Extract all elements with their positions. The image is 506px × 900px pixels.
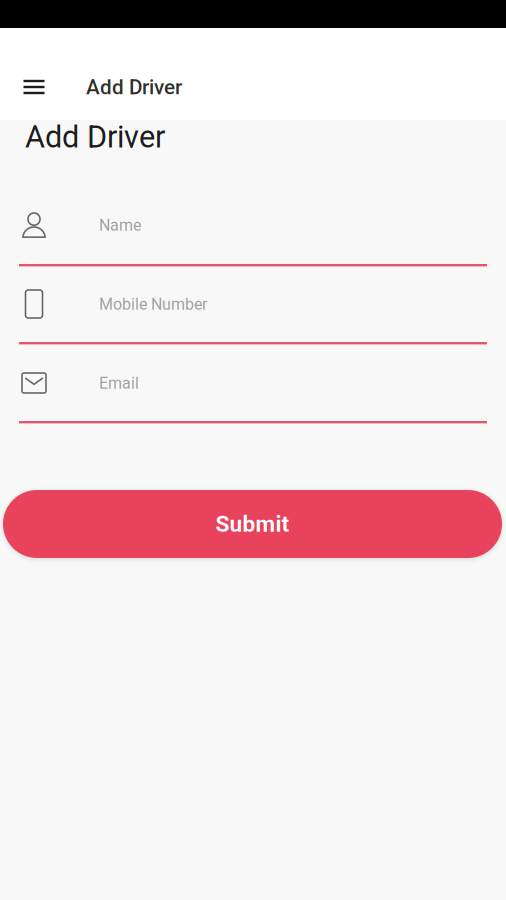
staticText: Name <box>99 216 141 235</box>
staticText: Add Driver <box>86 75 182 99</box>
staticText: Submit <box>215 511 289 537</box>
button[interactable]: Menu <box>11 65 57 109</box>
button[interactable]: Submit <box>3 490 502 558</box>
button[interactable]: Email <box>0 353 506 424</box>
button[interactable]: Name <box>0 195 506 267</box>
staticText: Add Driver <box>25 119 165 155</box>
button[interactable]: Mobile Number <box>0 274 506 345</box>
staticText: Mobile Number <box>99 295 207 314</box>
staticText: Email <box>99 374 139 393</box>
